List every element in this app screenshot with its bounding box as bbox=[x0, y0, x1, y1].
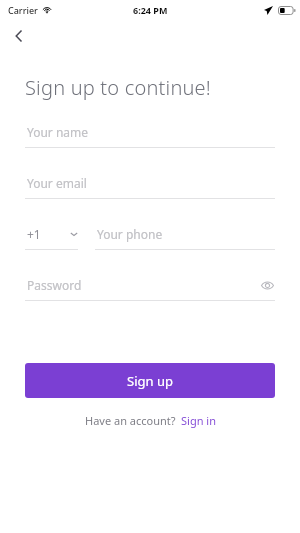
staticText: Your email bbox=[27, 175, 87, 191]
button[interactable]: Show password bbox=[259, 277, 275, 293]
staticText: Have an account? bbox=[85, 413, 176, 428]
button[interactable]: Your phone bbox=[95, 226, 275, 250]
staticText: Password bbox=[27, 277, 82, 293]
staticText: +1 bbox=[27, 226, 41, 242]
button[interactable]: Sign up bbox=[25, 363, 275, 398]
staticText: Sign up to continue! bbox=[25, 74, 211, 101]
staticText: Sign up bbox=[127, 372, 173, 390]
button[interactable]: Your name bbox=[25, 124, 275, 148]
staticText: Sign in bbox=[181, 413, 216, 428]
staticText: Your name bbox=[27, 124, 89, 140]
button[interactable]: Your email bbox=[25, 175, 275, 199]
staticText: Your phone bbox=[97, 226, 163, 242]
button[interactable]: Back bbox=[5, 22, 33, 50]
button[interactable]: Sign in bbox=[181, 413, 216, 428]
button[interactable]: Country code bbox=[25, 226, 78, 250]
staticText: Carrier bbox=[8, 4, 38, 16]
staticText: 6:24 PM bbox=[133, 4, 168, 16]
button[interactable]: Password bbox=[25, 277, 275, 301]
